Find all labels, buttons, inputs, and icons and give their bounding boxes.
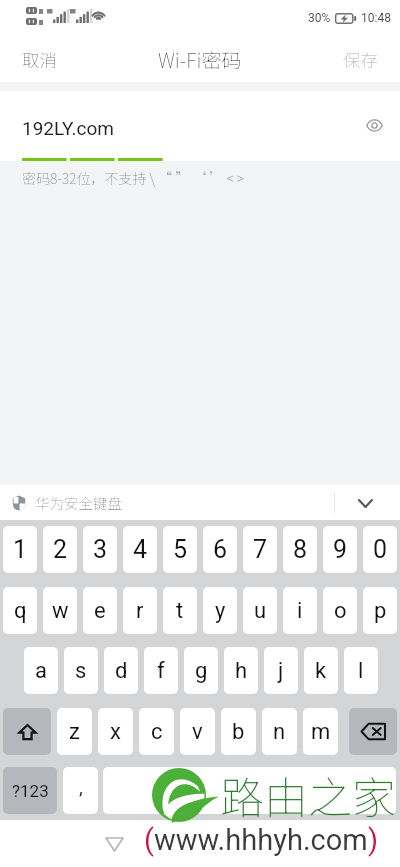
button[interactable]: Space — [103, 767, 396, 814]
staticText: 取消 — [22, 47, 57, 72]
staticText: 8 — [293, 535, 308, 564]
button[interactable]: 3 — [83, 526, 117, 573]
button[interactable]: 9 — [323, 526, 357, 573]
staticText: 2 — [53, 535, 68, 564]
staticText: w — [52, 598, 69, 624]
staticText: 保存 — [343, 47, 378, 72]
button[interactable]: f — [144, 647, 178, 694]
staticText: 1 — [13, 535, 28, 564]
staticText: u — [254, 598, 267, 624]
button[interactable]: n — [262, 708, 297, 755]
button[interactable]: 1 — [3, 526, 37, 573]
button[interactable]: a — [24, 647, 58, 694]
button[interactable]: p — [363, 587, 397, 634]
staticText: 路由之家 — [220, 763, 396, 827]
button[interactable]: ?123 — [3, 767, 57, 814]
staticText: g — [195, 658, 208, 684]
button[interactable]: d — [104, 647, 138, 694]
staticText: r — [136, 598, 144, 624]
button[interactable]: v — [180, 708, 215, 755]
staticText: k — [315, 658, 327, 684]
button[interactable]: Hide keyboard — [350, 488, 380, 518]
button[interactable]: l — [344, 647, 378, 694]
staticText: j — [278, 658, 284, 684]
staticText: 30% — [308, 11, 331, 25]
staticText: l — [358, 658, 364, 684]
staticText: o — [334, 598, 347, 624]
staticText: 9 — [333, 535, 348, 564]
staticText: e — [94, 598, 106, 624]
staticText: d — [115, 658, 128, 684]
staticText: x — [110, 719, 121, 745]
staticText: 10:48 — [361, 11, 391, 25]
button[interactable]: h — [224, 647, 258, 694]
button[interactable]: c — [139, 708, 174, 755]
staticText: b — [232, 719, 245, 745]
button[interactable]: e — [83, 587, 117, 634]
staticText: z — [69, 719, 80, 745]
staticText: 5 — [173, 535, 188, 564]
staticText: 6 — [213, 535, 228, 564]
staticText: , — [79, 776, 83, 798]
button[interactable]: k — [304, 647, 338, 694]
button[interactable]: 保存 — [321, 36, 400, 82]
staticText: a — [35, 658, 47, 684]
button[interactable]: , — [63, 767, 98, 814]
staticText: 192LY.com — [22, 117, 114, 139]
button[interactable]: b — [221, 708, 256, 755]
button[interactable]: o — [323, 587, 357, 634]
staticText: ( — [144, 823, 154, 857]
staticText: i — [297, 598, 303, 624]
button[interactable]: Shift — [3, 708, 51, 755]
staticText: c — [151, 719, 163, 745]
button[interactable]: g — [184, 647, 218, 694]
staticText: t — [176, 598, 184, 624]
staticText: n — [273, 719, 286, 745]
staticText: s — [75, 658, 87, 684]
staticText: f — [157, 658, 165, 684]
staticText: 密码8-32位，不支持 \ “ ” ‘ ’ < > — [22, 168, 245, 188]
button[interactable]: 5 — [163, 526, 197, 573]
staticText: y — [215, 598, 226, 624]
button[interactable]: i — [283, 587, 317, 634]
staticText: ) — [368, 823, 379, 857]
button[interactable]: 取消 — [0, 36, 79, 82]
button[interactable]: 7 — [243, 526, 277, 573]
staticText: 华为安全键盘 — [35, 492, 122, 513]
button[interactable]: Backspace — [349, 708, 397, 755]
button[interactable]: 6 — [203, 526, 237, 573]
staticText: ?123 — [12, 781, 49, 801]
button[interactable]: w — [43, 587, 77, 634]
button[interactable]: z — [57, 708, 92, 755]
staticText: 4 — [133, 535, 148, 564]
button[interactable]: q — [3, 587, 37, 634]
staticText: www.hhhyh.com — [154, 823, 368, 857]
button[interactable]: x — [98, 708, 133, 755]
button[interactable]: m — [303, 708, 338, 755]
staticText: Wi-Fi密码 — [158, 45, 242, 74]
button[interactable]: u — [243, 587, 277, 634]
staticText: 0 — [373, 535, 388, 564]
staticText: 3 — [93, 535, 108, 564]
staticText: v — [192, 719, 203, 745]
button[interactable]: 4 — [123, 526, 157, 573]
staticText: m — [311, 719, 331, 745]
button[interactable]: r — [123, 587, 157, 634]
button[interactable]: 0 — [363, 526, 397, 573]
button[interactable]: t — [163, 587, 197, 634]
button[interactable]: Back — [98, 828, 130, 860]
button[interactable]: s — [64, 647, 98, 694]
button[interactable]: 8 — [283, 526, 317, 573]
button[interactable]: j — [264, 647, 298, 694]
button[interactable]: y — [203, 587, 237, 634]
staticText: p — [374, 598, 387, 624]
staticText: h — [235, 658, 248, 684]
button[interactable]: 2 — [43, 526, 77, 573]
staticText: 7 — [253, 535, 268, 564]
button[interactable]: Show password — [358, 109, 390, 141]
staticText: q — [14, 598, 27, 624]
